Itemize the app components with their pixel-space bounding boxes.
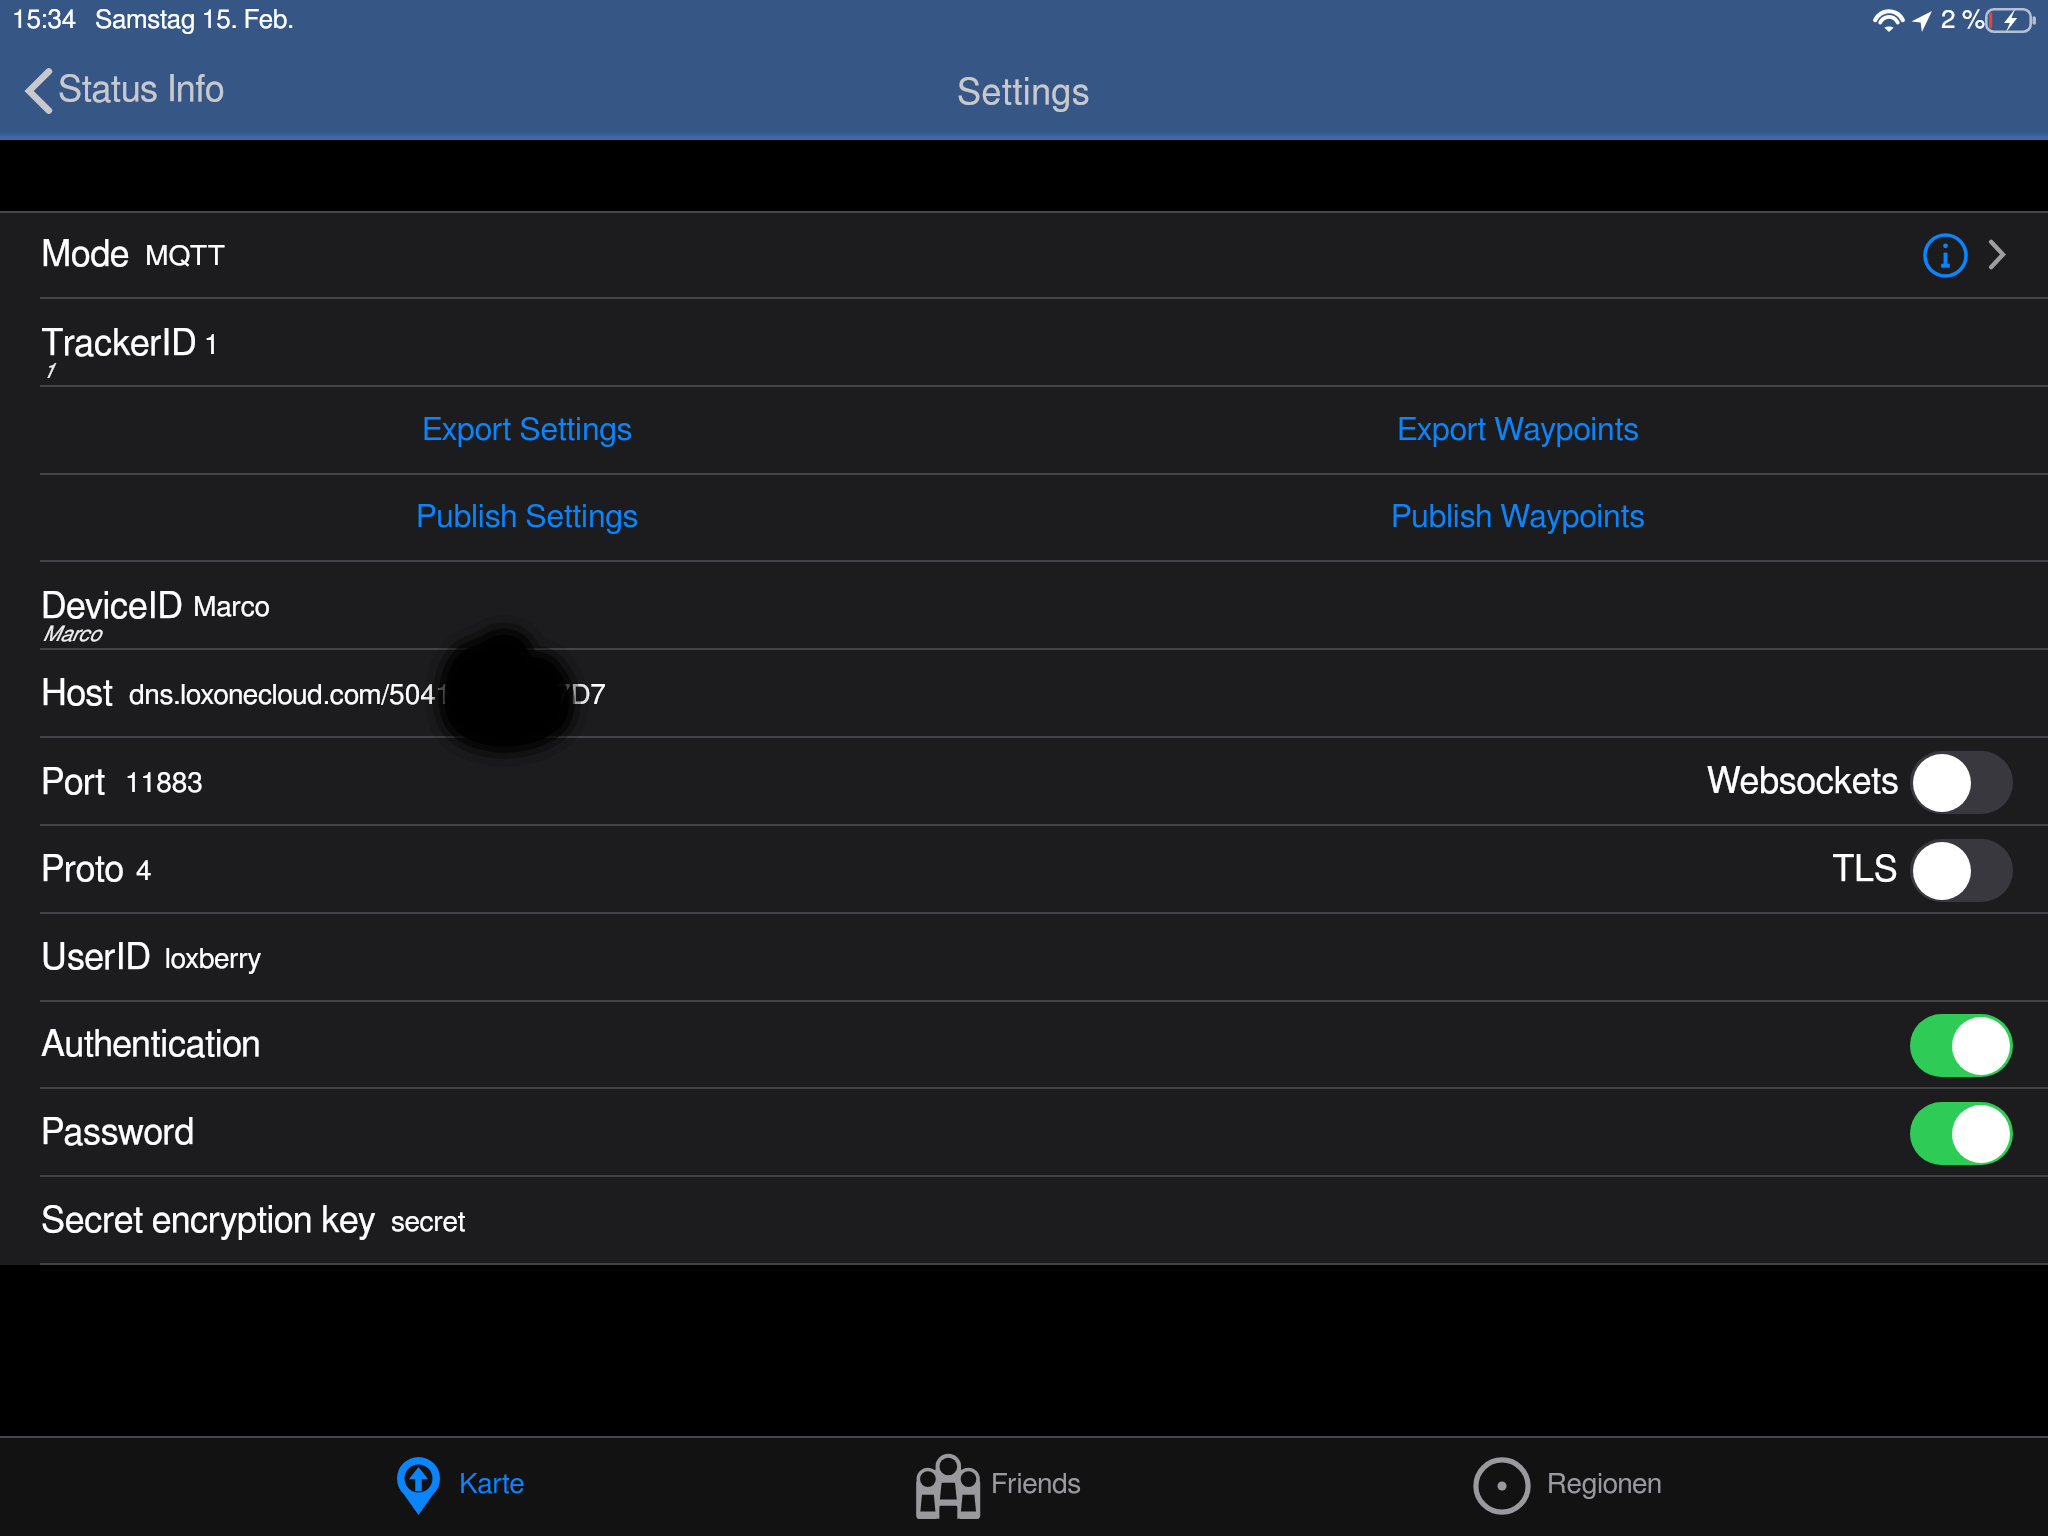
- button[interactable]: Publish Waypoints: [1028, 474, 2008, 562]
- staticText: Karte: [459, 1471, 525, 1499]
- staticText: Regionen: [1547, 1471, 1662, 1499]
- button[interactable]: Information about Mode: [1922, 232, 1969, 279]
- button[interactable]: Export Settings: [0, 387, 2048, 475]
- staticText: secret: [391, 1209, 466, 1237]
- button[interactable]: Disabled: [1910, 839, 2013, 902]
- staticText: DeviceID: [41, 589, 183, 625]
- button[interactable]: TrackerID: [0, 299, 2048, 387]
- staticText: 1: [204, 332, 220, 360]
- button[interactable]: Karte: [201, 1436, 721, 1536]
- button[interactable]: Port: [0, 738, 2048, 826]
- staticText: Proto: [41, 852, 124, 888]
- staticText: 1: [42, 361, 54, 382]
- button[interactable]: Enabled: [1910, 1102, 2013, 1165]
- staticText: Password: [41, 1115, 195, 1151]
- staticText: dns.loxonecloud.com/5041A2B3C07D7: [129, 682, 606, 710]
- staticText: Export Settings: [422, 414, 633, 446]
- staticText: TLS: [1832, 852, 1898, 888]
- button[interactable]: Authentication: [0, 1001, 2048, 1089]
- button[interactable]: UserID: [0, 914, 2048, 1002]
- staticText: 4: [136, 858, 152, 886]
- staticText: UserID: [41, 940, 151, 976]
- staticText: Host: [41, 676, 113, 712]
- button[interactable]: DeviceID: [0, 562, 2048, 650]
- staticText: 11883: [125, 770, 203, 798]
- button[interactable]: Proto: [0, 826, 2048, 914]
- staticText: 15:34: [12, 7, 77, 33]
- staticText: MQTT: [145, 243, 226, 271]
- staticText: Status Info: [58, 72, 225, 108]
- staticText: Publish Waypoints: [1391, 501, 1645, 533]
- staticText: Friends: [991, 1471, 1082, 1499]
- staticText: Marco: [193, 594, 270, 622]
- button[interactable]: Enabled: [1910, 1014, 2013, 1077]
- staticText: Publish Settings: [416, 501, 639, 533]
- staticText: 2 %: [1941, 7, 1986, 33]
- staticText: Settings: [957, 75, 1091, 111]
- button[interactable]: Export Waypoints: [1028, 387, 2008, 475]
- button[interactable]: Publish Settings: [40, 474, 1014, 562]
- button[interactable]: Mode: [0, 211, 2048, 299]
- button[interactable]: Password: [0, 1089, 2048, 1177]
- staticText: Marco: [42, 624, 101, 645]
- staticText: Authentication: [41, 1027, 261, 1063]
- button[interactable]: Disabled: [1910, 751, 2013, 814]
- staticText: Export Waypoints: [1397, 414, 1639, 446]
- staticText: Samstag 15. Feb.: [95, 7, 294, 33]
- staticText: Port: [41, 765, 106, 801]
- button[interactable]: Back to Status Info: [18, 66, 231, 116]
- staticText: Secret encryption key: [41, 1203, 376, 1239]
- button[interactable]: Secret encryption key: [0, 1177, 2048, 1265]
- staticText: TrackerID: [41, 326, 197, 362]
- button[interactable]: Host: [0, 650, 2048, 738]
- button[interactable]: Friends: [759, 1436, 1239, 1536]
- button[interactable]: Publish Settings: [0, 474, 2048, 562]
- staticText: Mode: [41, 237, 130, 273]
- button[interactable]: Regionen: [1297, 1436, 1837, 1536]
- button[interactable]: Export Settings: [40, 387, 1014, 475]
- staticText: Websockets: [1707, 764, 1899, 800]
- staticText: loxberry: [165, 946, 262, 974]
